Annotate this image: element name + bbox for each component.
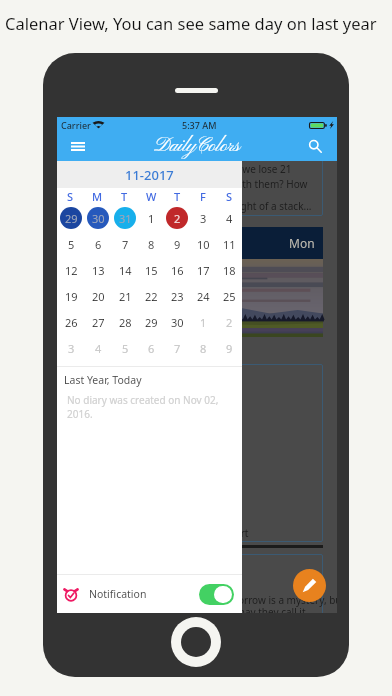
button[interactable]: 19 xyxy=(60,285,82,307)
button[interactable]: 31 xyxy=(114,207,136,229)
staticText: 6 xyxy=(148,341,155,356)
button[interactable]: 21 xyxy=(114,285,136,307)
staticText: 9 xyxy=(226,341,233,356)
button[interactable]: 5 xyxy=(60,233,82,255)
staticText: How many hours do we lose 21 xyxy=(145,162,292,176)
button[interactable] xyxy=(199,584,234,605)
staticText: 5 xyxy=(122,341,129,356)
staticText: F xyxy=(200,189,206,204)
staticText: Calenar View, You can see same day on la… xyxy=(5,12,377,34)
staticText: 4 xyxy=(95,341,102,356)
staticText: 12 xyxy=(65,263,78,278)
staticText: 18 xyxy=(223,263,236,278)
button[interactable]: 6 xyxy=(140,337,162,359)
button[interactable]: 8 xyxy=(140,233,162,255)
button[interactable]: 28 xyxy=(114,311,136,333)
staticText: 1 xyxy=(148,211,155,226)
staticText: 8 xyxy=(148,237,155,252)
staticText: 8 xyxy=(200,341,207,356)
staticText: Mon xyxy=(289,235,315,251)
button[interactable]: 25 xyxy=(218,285,240,307)
button[interactable]: 23 xyxy=(166,285,188,307)
button[interactable]: 12 xyxy=(60,259,82,281)
staticText: 10 xyxy=(197,237,210,252)
staticText: 16 xyxy=(171,263,184,278)
staticText: S xyxy=(67,189,74,204)
button[interactable]: 29 xyxy=(60,207,82,229)
staticText: 23 xyxy=(171,289,184,304)
button[interactable]: 24 xyxy=(192,285,214,307)
staticText: 20 xyxy=(92,289,105,304)
staticText: 11-2017 xyxy=(125,166,174,184)
staticText: 31 xyxy=(119,211,132,226)
button[interactable]: 26 xyxy=(60,311,82,333)
button[interactable]: 20 xyxy=(87,285,109,307)
button[interactable]: Menu xyxy=(57,132,99,161)
button[interactable]: 30 xyxy=(166,311,188,333)
button[interactable]: Notification xyxy=(57,575,242,613)
button[interactable]: Search xyxy=(294,132,337,161)
staticText: 11 xyxy=(223,237,236,252)
button[interactable]: 13 xyxy=(87,259,109,281)
button[interactable]: 11 xyxy=(218,233,240,255)
staticText: 3 xyxy=(200,211,207,226)
staticText: 9 xyxy=(174,237,181,252)
button[interactable]: 2 xyxy=(166,207,188,229)
button[interactable]: 8 xyxy=(192,337,214,359)
staticText: days or 504 hours with them? How xyxy=(145,177,308,191)
staticText: 30 xyxy=(92,211,105,226)
staticText: 3 xyxy=(68,341,75,356)
staticText: No diary was created on Nov 02, 2016. xyxy=(67,393,220,421)
staticText: 17 xyxy=(197,263,210,278)
staticText: W xyxy=(146,189,157,204)
button[interactable]: 9 xyxy=(218,337,240,359)
staticText: 13 xyxy=(92,263,105,278)
button[interactable]: 1 xyxy=(192,311,214,333)
button[interactable]: 18 xyxy=(218,259,240,281)
staticText: 5 xyxy=(68,237,75,252)
staticText: 26 xyxy=(65,315,78,330)
button[interactable]: 30 xyxy=(87,207,109,229)
staticText: 5:37 AM xyxy=(182,119,217,131)
button[interactable]: 16 xyxy=(166,259,188,281)
staticText: T xyxy=(121,189,128,204)
button[interactable]: 4 xyxy=(87,337,109,359)
button[interactable]: 1 xyxy=(140,207,162,229)
button[interactable]: 7 xyxy=(166,337,188,359)
staticText: 22 xyxy=(145,289,158,304)
button[interactable]: 3 xyxy=(192,207,214,229)
button[interactable]: 3 xyxy=(60,337,82,359)
staticText: M xyxy=(92,189,103,204)
button[interactable]: 17 xyxy=(192,259,214,281)
staticText: 7 xyxy=(174,341,181,356)
staticText: S xyxy=(226,189,233,204)
button[interactable]: 6 xyxy=(87,233,109,255)
staticText: 29 xyxy=(65,211,78,226)
button[interactable]: 15 xyxy=(140,259,162,281)
button[interactable]: 22 xyxy=(140,285,162,307)
button[interactable]: 9 xyxy=(166,233,188,255)
button[interactable]: 2 xyxy=(218,311,240,333)
staticText: 25 xyxy=(223,289,236,304)
staticText: 6 xyxy=(95,237,102,252)
staticText: 24 xyxy=(197,289,210,304)
staticText: T xyxy=(174,189,181,204)
button[interactable]: 10 xyxy=(192,233,214,255)
staticText: 14 xyxy=(119,263,132,278)
button[interactable]: 7 xyxy=(114,233,136,255)
staticText: I'm happy to restart xyxy=(156,526,249,540)
staticText: Last Year, Today xyxy=(64,373,142,387)
button[interactable]: 14 xyxy=(114,259,136,281)
button[interactable]: New entry xyxy=(293,569,326,602)
button[interactable]: 27 xyxy=(87,311,109,333)
staticText: 7 xyxy=(122,237,129,252)
staticText: 27 xyxy=(92,315,105,330)
button[interactable]: 4 xyxy=(218,207,240,229)
staticText: 30 xyxy=(171,315,184,330)
staticText: many days is the height of a stack... xyxy=(145,199,312,213)
staticText: Notification xyxy=(89,587,147,601)
button[interactable]: 5 xyxy=(114,337,136,359)
staticText: 2 xyxy=(174,211,181,226)
button[interactable]: 29 xyxy=(140,311,162,333)
staticText: today is a gift, that's whay they call i… xyxy=(134,605,306,613)
